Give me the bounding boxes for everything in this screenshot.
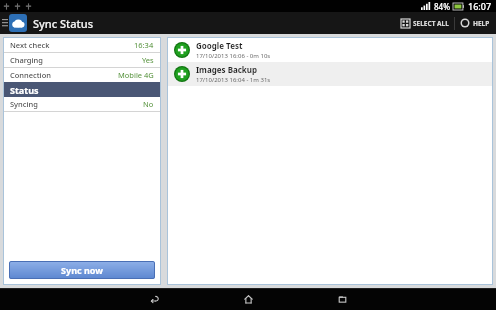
- staticText: Sync Status: [33, 16, 94, 31]
- button[interactable]: Recent apps: [316, 288, 368, 310]
- staticText: SELECT ALL: [413, 19, 449, 28]
- button[interactable]: SELECT ALL: [396, 12, 454, 34]
- staticText: 84%: [434, 1, 450, 12]
- button[interactable]: HELP: [455, 12, 496, 34]
- staticText: No: [143, 99, 154, 109]
- staticText: 17/10/2013 16:06 - 0m 10s: [196, 52, 271, 60]
- staticText: Status: [10, 84, 39, 96]
- staticText: Charging: [10, 55, 43, 65]
- button[interactable]: Google Test: [168, 38, 492, 62]
- button[interactable]: Home: [222, 288, 274, 310]
- button[interactable]: Syncing: [4, 97, 160, 111]
- staticText: Next check: [10, 40, 50, 50]
- staticText: 17/10/2013 16:04 - 1m 31s: [196, 76, 271, 84]
- button[interactable]: Images Backup: [168, 62, 492, 86]
- staticText: Syncing: [10, 99, 38, 109]
- staticText: Google Test: [196, 40, 243, 51]
- staticText: HELP: [473, 19, 490, 28]
- button[interactable]: Connection: [4, 68, 160, 82]
- staticText: Mobile 4G: [118, 70, 154, 80]
- staticText: 16:34: [134, 40, 154, 50]
- button[interactable]: Charging: [4, 53, 160, 67]
- button[interactable]: Back: [128, 288, 180, 310]
- button[interactable]: Sync now: [9, 261, 155, 279]
- staticText: Images Backup: [196, 64, 258, 75]
- staticText: Yes: [142, 55, 154, 65]
- button[interactable]: Up: [0, 12, 9, 34]
- staticText: Connection: [10, 70, 51, 80]
- button[interactable]: Next check: [4, 38, 160, 52]
- staticText: Sync now: [61, 264, 103, 276]
- staticText: 16:07: [468, 0, 492, 12]
